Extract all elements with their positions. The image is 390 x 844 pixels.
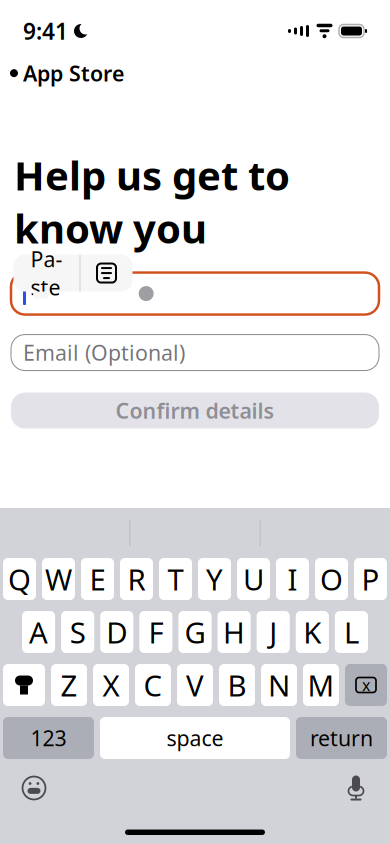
- staticText: E: [89, 559, 105, 598]
- button[interactable]: Dictation: [333, 767, 379, 809]
- staticText: O: [320, 559, 343, 598]
- button[interactable]: 123: [3, 717, 94, 759]
- button[interactable]: F: [139, 611, 172, 653]
- staticText: Y: [206, 559, 223, 598]
- staticText: L: [344, 612, 359, 651]
- button[interactable]: Emoji: [11, 767, 57, 809]
- staticText: D: [106, 612, 127, 651]
- staticText: G: [184, 612, 205, 651]
- staticText: F: [148, 612, 163, 651]
- button[interactable]: R: [120, 558, 153, 600]
- button[interactable]: Y: [198, 558, 231, 600]
- button[interactable]: A: [22, 611, 55, 653]
- button[interactable]: C: [135, 664, 171, 706]
- button[interactable]: W: [42, 558, 75, 600]
- button[interactable]: E: [81, 558, 114, 600]
- button[interactable]: M: [303, 664, 339, 706]
- button[interactable]: N: [261, 664, 297, 706]
- button[interactable]: Q: [3, 558, 36, 600]
- button[interactable]: Confirm details: [11, 393, 379, 429]
- staticText: Z: [60, 665, 77, 704]
- staticText: Confirm details: [115, 396, 274, 425]
- button[interactable]: V: [177, 664, 213, 706]
- staticText: Help us get to know you: [14, 148, 290, 254]
- button[interactable]: return: [296, 717, 387, 759]
- staticText: return: [310, 724, 373, 752]
- staticText: U: [243, 559, 264, 598]
- staticText: R: [127, 559, 145, 598]
- button[interactable]: P: [354, 558, 387, 600]
- staticText: A: [29, 612, 48, 651]
- button[interactable]: K: [296, 611, 329, 653]
- button[interactable]: J: [257, 611, 290, 653]
- button[interactable]: Shift: [3, 664, 45, 706]
- staticText: 9:41: [23, 16, 68, 46]
- button[interactable]: I: [276, 558, 309, 600]
- staticText: H: [223, 612, 245, 651]
- staticText: App Store: [23, 59, 124, 87]
- staticText: x: [362, 674, 370, 696]
- button[interactable]: Delete: [345, 664, 387, 706]
- staticText: Q: [8, 559, 31, 598]
- staticText: V: [186, 665, 204, 704]
- button[interactable]: H: [218, 611, 251, 653]
- staticText: C: [143, 665, 162, 704]
- button[interactable]: X: [93, 664, 129, 706]
- button[interactable]: Scan text: [80, 255, 132, 292]
- staticText: I: [287, 559, 297, 598]
- button[interactable]: O: [315, 558, 348, 600]
- button[interactable]: S: [61, 611, 94, 653]
- button[interactable]: L: [335, 611, 368, 653]
- staticText: S: [70, 612, 86, 651]
- staticText: K: [303, 612, 321, 651]
- button[interactable]: Email (Optional): [11, 335, 379, 371]
- button[interactable]: space: [100, 717, 290, 759]
- staticText: B: [227, 665, 246, 704]
- staticText: space: [166, 724, 223, 752]
- staticText: M: [307, 665, 334, 704]
- button[interactable]: U: [237, 558, 270, 600]
- button[interactable]: D: [100, 611, 133, 653]
- button[interactable]: G: [178, 611, 211, 653]
- button[interactable]: Z: [51, 664, 87, 706]
- button[interactable]: Paste: [13, 255, 79, 292]
- button[interactable]: [11, 273, 379, 315]
- staticText: Email (Optional): [23, 338, 185, 367]
- staticText: N: [268, 665, 290, 704]
- staticText: T: [167, 559, 183, 598]
- staticText: X: [102, 665, 119, 704]
- staticText: Paste: [30, 245, 62, 301]
- button[interactable]: App Store: [0, 56, 134, 90]
- staticText: W: [45, 559, 72, 598]
- staticText: P: [361, 559, 379, 598]
- staticText: J: [269, 612, 277, 651]
- staticText: 123: [30, 724, 66, 752]
- button[interactable]: T: [159, 558, 192, 600]
- button[interactable]: B: [219, 664, 255, 706]
